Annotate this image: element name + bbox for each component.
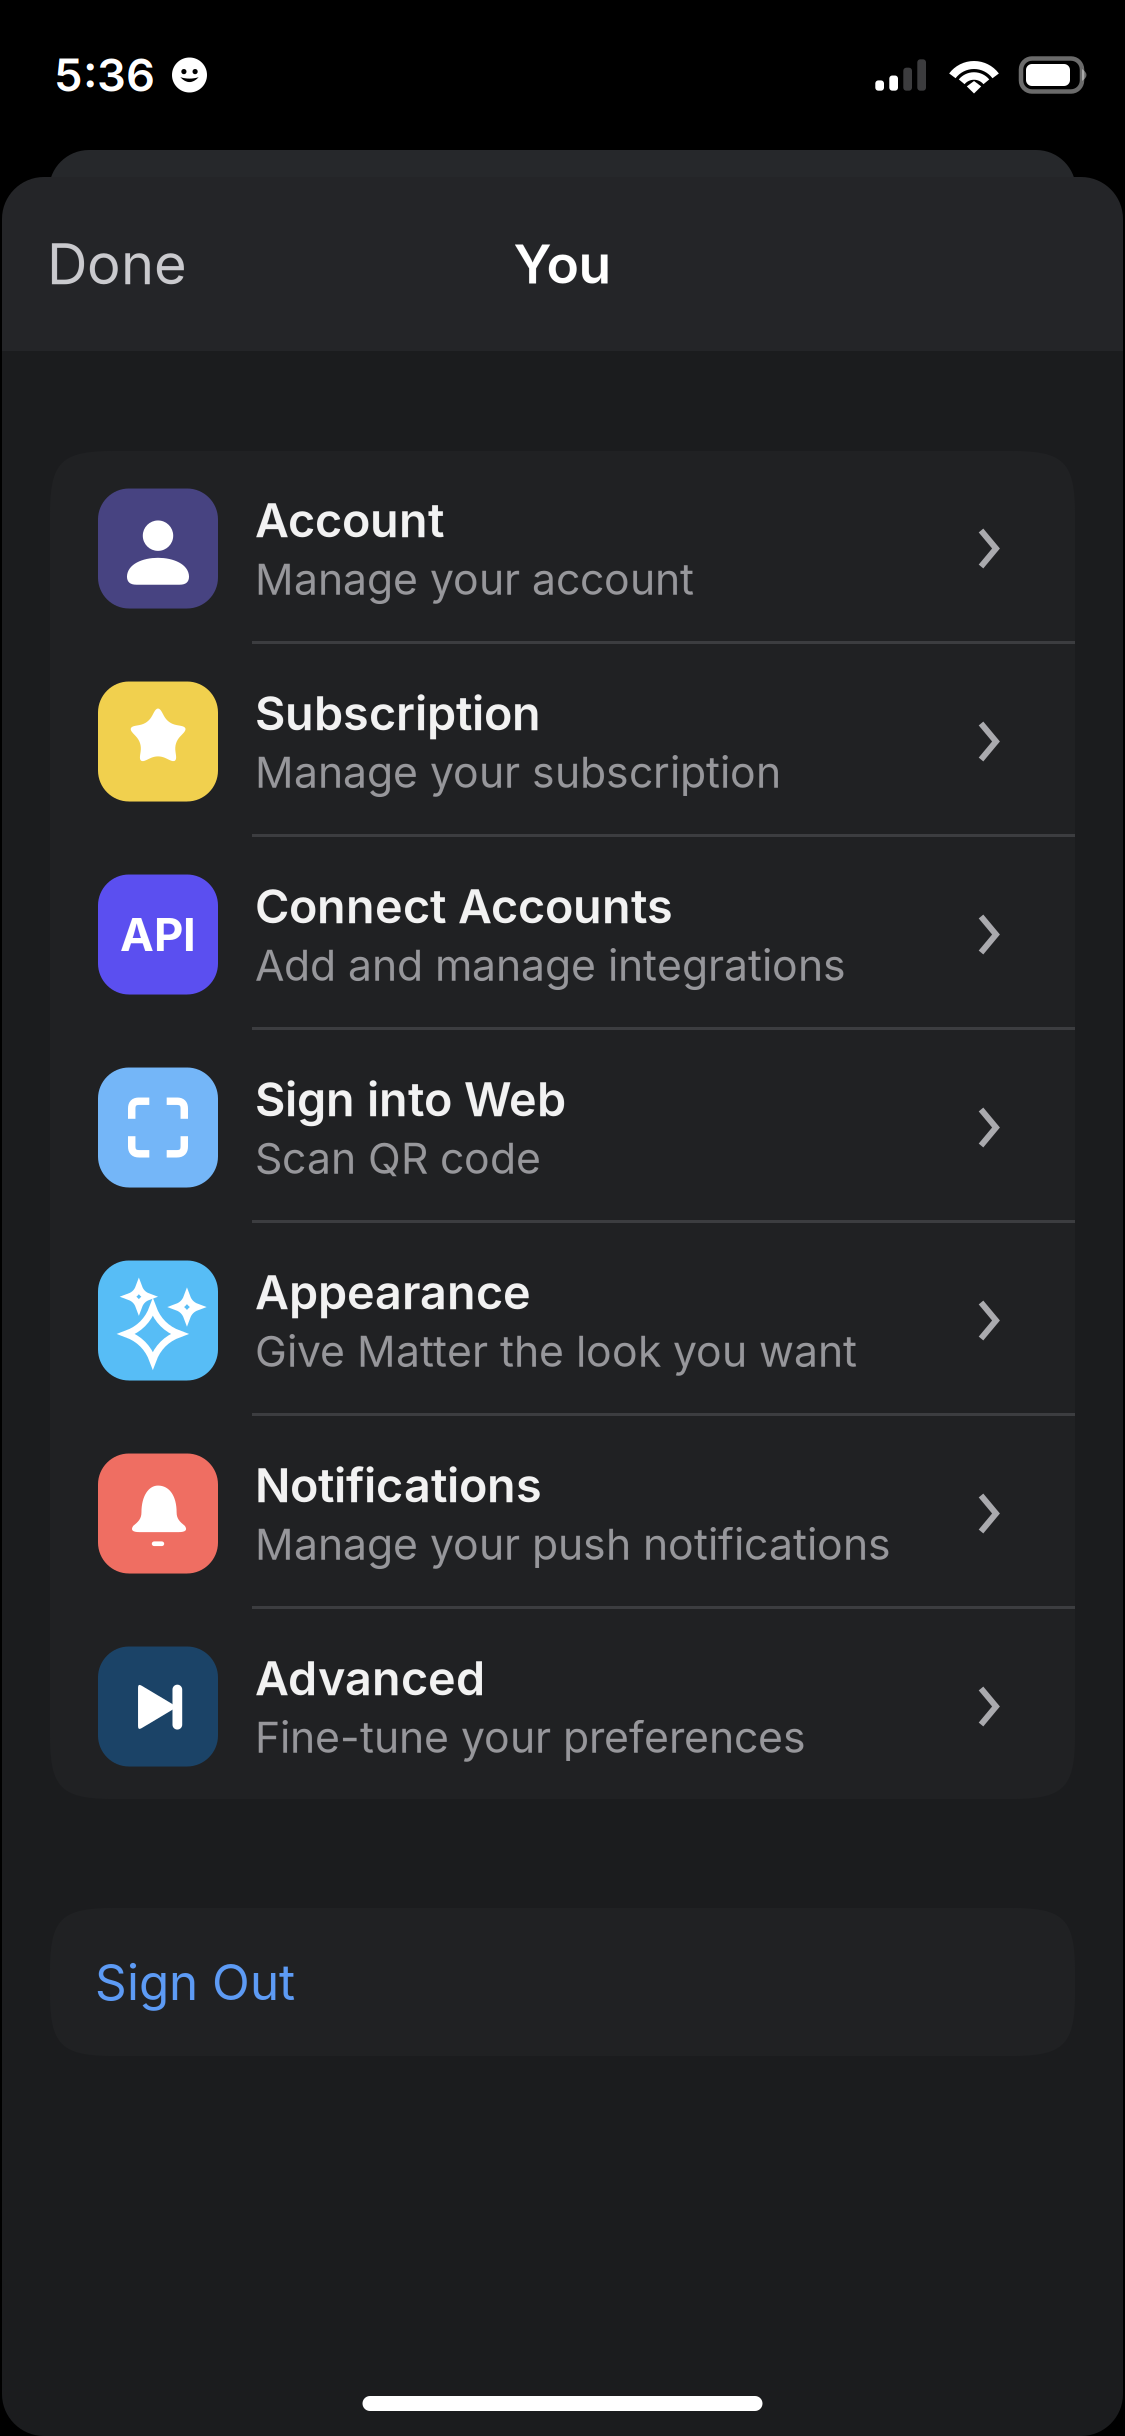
button[interactable]: Subscription xyxy=(50,644,1075,834)
staticText: Advanced xyxy=(255,1650,485,1706)
staticText: Manage your subscription xyxy=(255,746,781,798)
staticText: 5:36 xyxy=(54,48,155,102)
staticText: Scan QR code xyxy=(255,1132,541,1184)
staticText: Add and manage integrations xyxy=(255,939,846,991)
staticText: Account xyxy=(255,492,444,548)
staticText: You xyxy=(513,232,611,296)
button[interactable]: Sign into Web xyxy=(50,1030,1075,1220)
button[interactable]: Appearance xyxy=(50,1223,1075,1413)
staticText: Manage your push notifications xyxy=(255,1518,891,1570)
staticText: Sign Out xyxy=(95,1952,295,2012)
staticText: Give Matter the look you want xyxy=(255,1325,857,1377)
staticText: Notifications xyxy=(255,1457,542,1513)
button[interactable]: Advanced xyxy=(50,1609,1075,1799)
button[interactable]: Account xyxy=(50,451,1075,641)
staticText: Done xyxy=(47,230,187,298)
button[interactable]: Done xyxy=(2,177,232,351)
staticText: Sign into Web xyxy=(255,1071,566,1127)
button[interactable]: Sign Out xyxy=(50,1908,1075,2056)
button[interactable]: Notifications xyxy=(50,1416,1075,1606)
button[interactable]: API xyxy=(50,837,1075,1027)
staticText: API xyxy=(120,907,196,962)
staticText: Appearance xyxy=(255,1264,531,1320)
staticText: Subscription xyxy=(255,685,541,741)
staticText: Fine-tune your preferences xyxy=(255,1711,806,1763)
staticText: Manage your account xyxy=(255,553,694,605)
staticText: Connect Accounts xyxy=(255,878,673,934)
